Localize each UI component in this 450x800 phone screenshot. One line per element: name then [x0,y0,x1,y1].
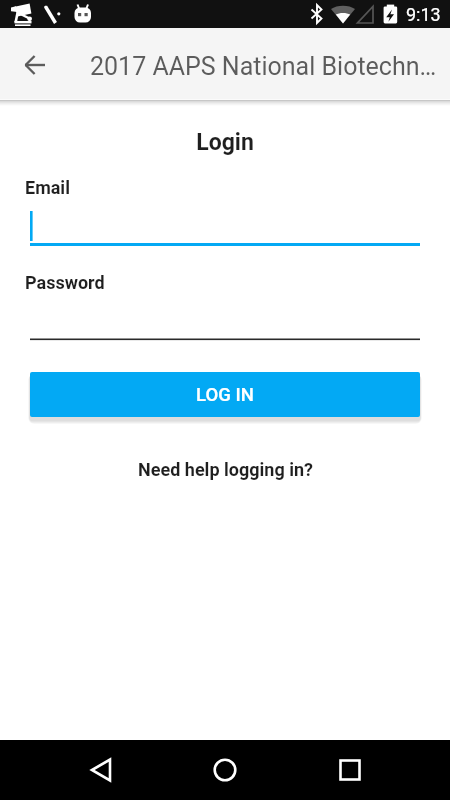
button[interactable] [30,300,420,341]
staticText: 2017 AAPS National Biotechn… [90,52,442,81]
staticText: Password [25,272,105,293]
button[interactable]: Recent apps [325,745,375,795]
staticText: Email [25,177,70,198]
button[interactable]: LOG IN [30,372,420,417]
staticText: Need help logging in? [138,459,313,480]
button[interactable] [30,205,420,247]
button[interactable]: Home [200,745,250,795]
staticText: Login [0,129,450,156]
button[interactable]: Navigate up [7,37,63,93]
button[interactable]: Back [76,745,126,795]
staticText: 9:13 [406,4,441,25]
staticText: LOG IN [196,384,254,406]
button[interactable]: Need help logging in? [130,454,321,485]
